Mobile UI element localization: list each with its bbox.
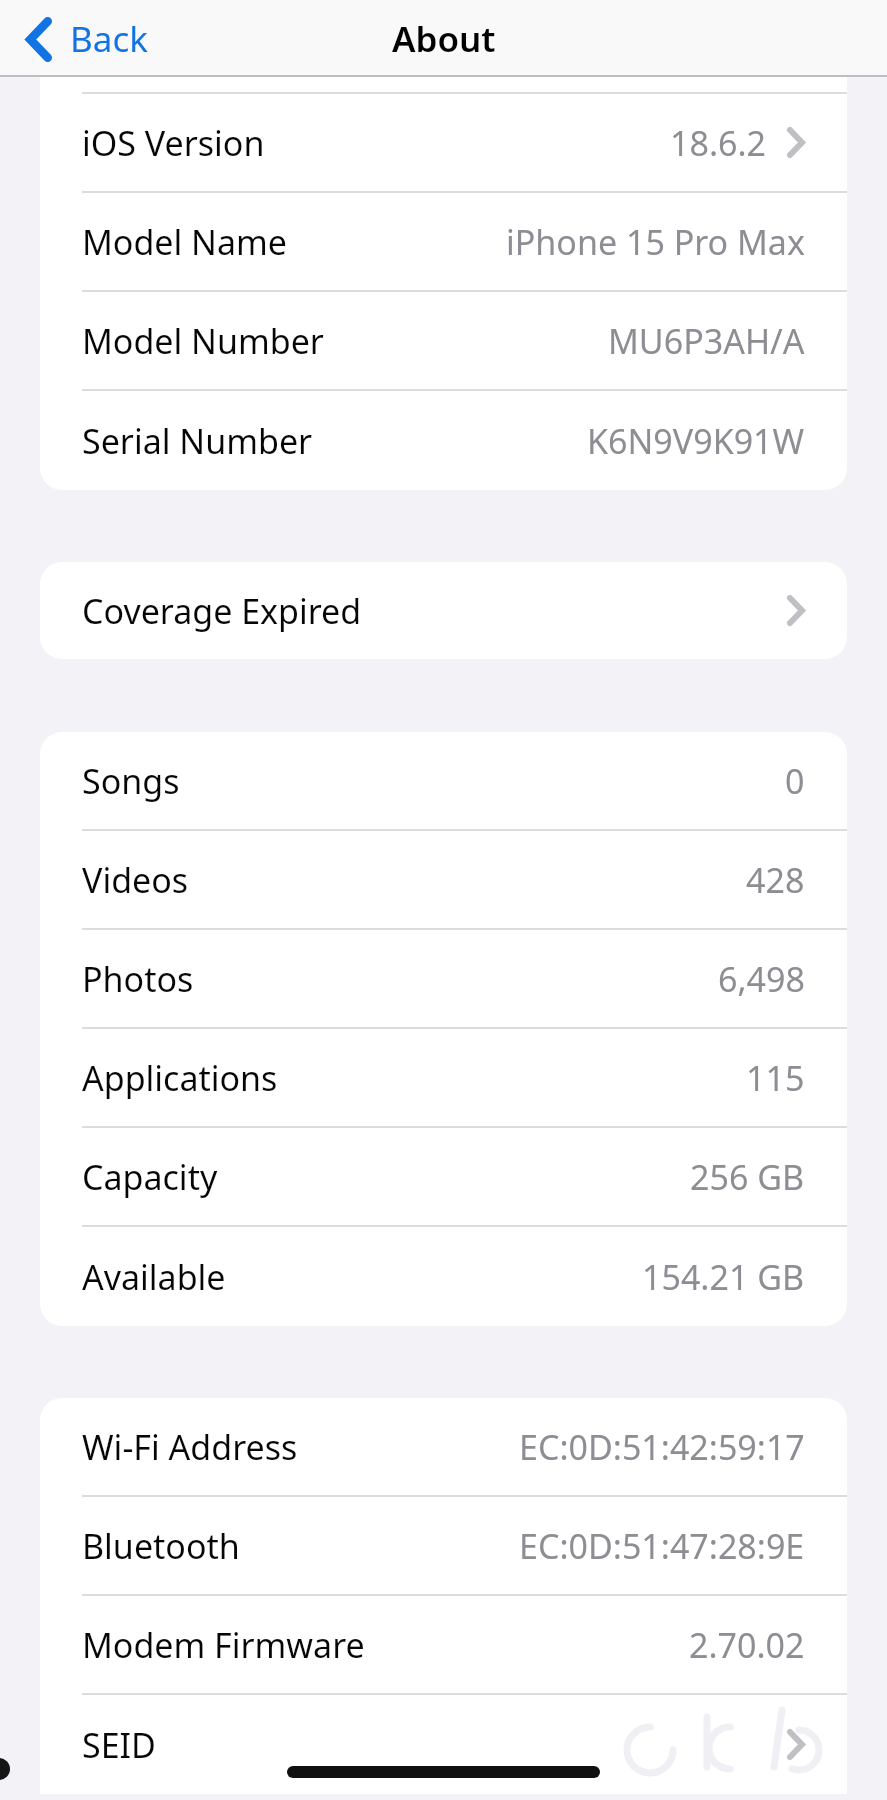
button[interactable]: Model Name — [40, 193, 847, 290]
staticText: Wi-Fi Address — [82, 1424, 298, 1470]
button[interactable]: Photos — [40, 930, 847, 1027]
button[interactable]: Serial Number — [40, 391, 847, 490]
staticText: 2.70.02 — [689, 1622, 805, 1668]
staticText: 115 — [746, 1055, 805, 1101]
staticText: 0 — [785, 758, 805, 804]
staticText: Photos — [82, 956, 194, 1002]
staticText: EC:0D:51:42:59:17 — [519, 1424, 805, 1470]
staticText: K6N9V9K91W — [587, 418, 805, 464]
button[interactable]: Capacity — [40, 1128, 847, 1225]
staticText: iOS Version — [82, 120, 265, 166]
button[interactable]: Coverage Expired — [40, 562, 847, 659]
staticText: 18.6.2 — [670, 120, 767, 166]
staticText: Model Name — [82, 219, 287, 265]
staticText: Back — [70, 15, 148, 63]
staticText: Applications — [82, 1055, 278, 1101]
staticText: 428 — [746, 857, 805, 903]
staticText: Videos — [82, 857, 189, 903]
button[interactable]: Model Number — [40, 292, 847, 389]
staticText: 256 GB — [690, 1154, 805, 1200]
button[interactable]: Videos — [40, 831, 847, 928]
staticText: Modem Firmware — [82, 1622, 365, 1668]
button[interactable]: Available — [40, 1227, 847, 1326]
button[interactable]: Applications — [40, 1029, 847, 1126]
staticText: Coverage Expired — [82, 588, 362, 634]
staticText: Serial Number — [82, 418, 313, 464]
button[interactable]: Back — [26, 15, 148, 63]
button[interactable]: SEID — [40, 1695, 847, 1794]
staticText: Available — [82, 1254, 226, 1300]
staticText: 154.21 GB — [642, 1254, 805, 1300]
button[interactable]: Modem Firmware — [40, 1596, 847, 1693]
staticText: Bluetooth — [82, 1523, 240, 1569]
staticText: EC:0D:51:47:28:9E — [519, 1523, 805, 1569]
button[interactable]: iOS Version — [40, 94, 847, 191]
staticText: Capacity — [82, 1154, 218, 1200]
button[interactable]: Wi-Fi Address — [40, 1398, 847, 1495]
staticText: MU6P3AH/A — [608, 318, 805, 364]
staticText: About — [392, 15, 496, 63]
staticText: iPhone 15 Pro Max — [506, 219, 805, 265]
staticText: Model Number — [82, 318, 324, 364]
button[interactable]: Songs — [40, 732, 847, 829]
staticText: Songs — [82, 758, 180, 804]
button[interactable]: Bluetooth — [40, 1497, 847, 1594]
staticText: 6,498 — [718, 956, 805, 1002]
staticText: SEID — [82, 1722, 156, 1768]
